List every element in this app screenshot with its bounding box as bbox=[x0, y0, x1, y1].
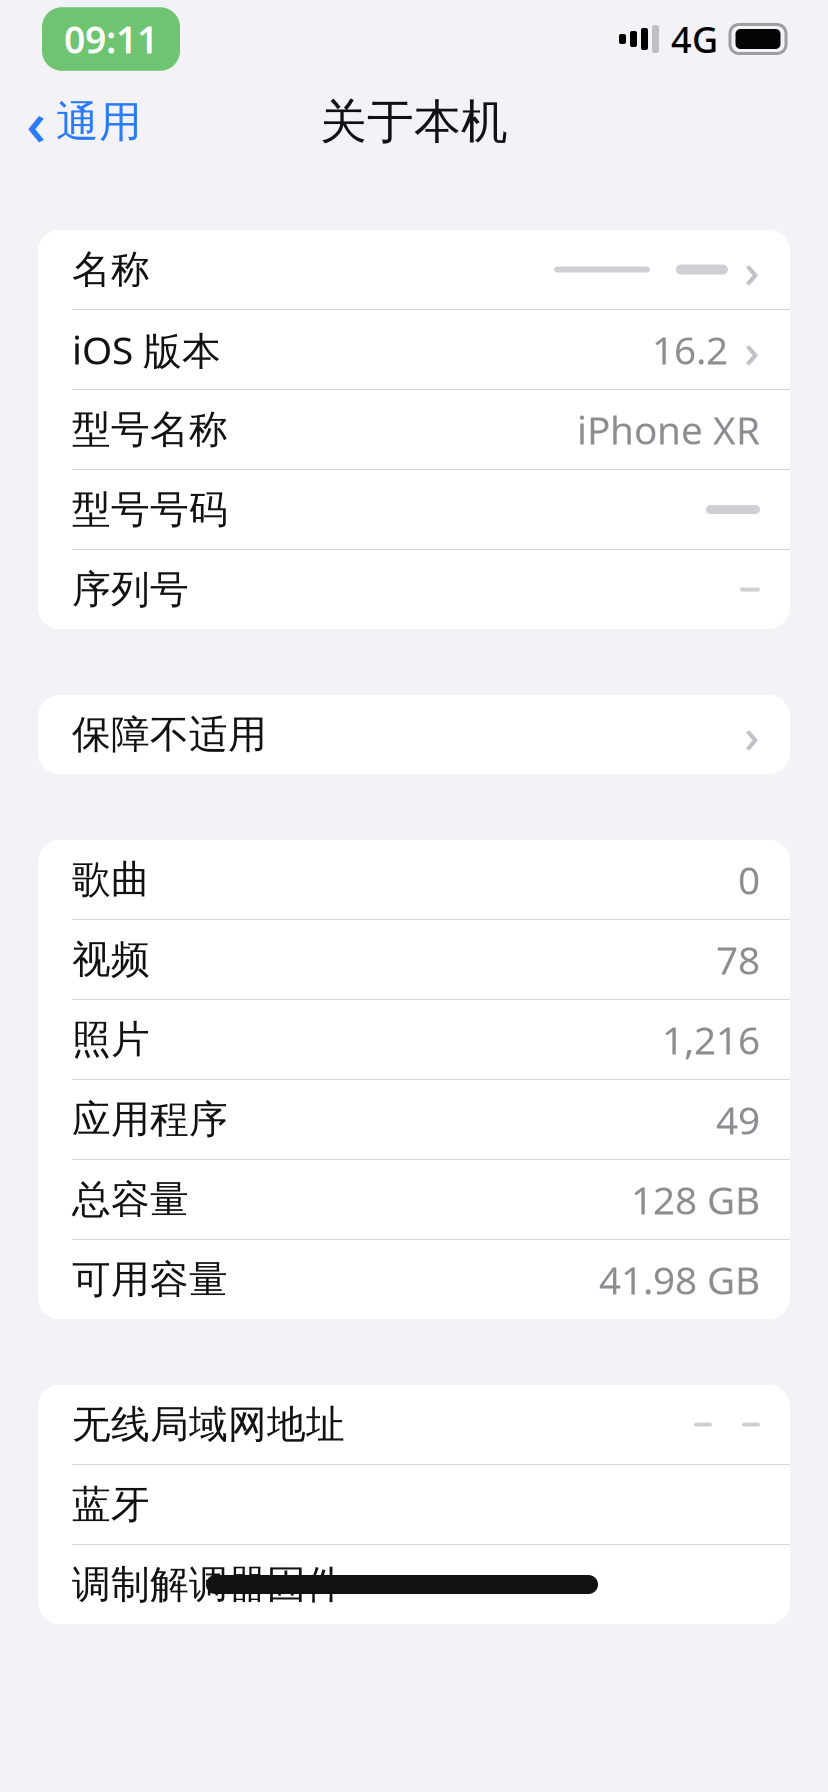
button[interactable]: 保障不适用 bbox=[38, 695, 790, 774]
staticText: › bbox=[744, 703, 760, 766]
staticText: 49 bbox=[716, 1094, 760, 1145]
staticText: 型号号码 bbox=[72, 486, 228, 533]
button[interactable]: 型号名称 bbox=[38, 390, 790, 469]
button[interactable]: iOS 版本 bbox=[38, 310, 790, 389]
staticText: ‹ bbox=[26, 81, 46, 163]
staticText: 128 GB bbox=[631, 1174, 760, 1225]
staticText: 应用程序 bbox=[72, 1096, 228, 1143]
staticText: 关于本机 bbox=[320, 93, 508, 151]
button[interactable]: 序列号 bbox=[38, 550, 790, 629]
button[interactable]: 调制解调器固件 bbox=[38, 1545, 790, 1624]
button[interactable]: 无线局域网地址 bbox=[38, 1385, 790, 1464]
button[interactable]: 名称 bbox=[38, 230, 790, 309]
button[interactable]: 歌曲 bbox=[38, 840, 790, 919]
staticText: 歌曲 bbox=[72, 856, 150, 903]
staticText: 总容量 bbox=[72, 1176, 189, 1223]
staticText: 16.2 bbox=[652, 324, 728, 375]
staticText: 序列号 bbox=[72, 566, 189, 613]
staticText: 型号名称 bbox=[72, 406, 228, 453]
staticText: 41.98 GB bbox=[599, 1254, 760, 1305]
staticText: 保障不适用 bbox=[72, 711, 267, 758]
button[interactable]: 总容量 bbox=[38, 1160, 790, 1239]
staticText: 视频 bbox=[72, 936, 150, 983]
staticText: 4G bbox=[671, 15, 718, 63]
button[interactable]: 蓝牙 bbox=[38, 1465, 790, 1544]
button[interactable]: 可用容量 bbox=[38, 1240, 790, 1319]
staticText: 名称 bbox=[72, 246, 150, 293]
staticText: › bbox=[744, 318, 760, 381]
staticText: 0 bbox=[738, 854, 760, 905]
button[interactable]: 照片 bbox=[38, 1000, 790, 1079]
staticText: 调制解调器固件 bbox=[72, 1561, 345, 1608]
button[interactable]: 应用程序 bbox=[38, 1080, 790, 1159]
button[interactable]: 视频 bbox=[38, 920, 790, 999]
staticText: iPhone XR bbox=[577, 404, 760, 455]
staticText: 09:11 bbox=[64, 14, 158, 64]
button[interactable]: 型号号码 bbox=[38, 470, 790, 549]
staticText: 照片 bbox=[72, 1016, 150, 1063]
staticText: 通用 bbox=[56, 96, 142, 148]
staticText: 无线局域网地址 bbox=[72, 1401, 345, 1448]
staticText: 蓝牙 bbox=[72, 1481, 150, 1528]
button[interactable]: ‹ bbox=[0, 87, 158, 157]
staticText: 78 bbox=[716, 934, 760, 985]
staticText: 可用容量 bbox=[72, 1256, 228, 1303]
staticText: iOS 版本 bbox=[72, 324, 221, 375]
staticText: 1,216 bbox=[662, 1014, 760, 1065]
staticText: › bbox=[744, 238, 760, 301]
